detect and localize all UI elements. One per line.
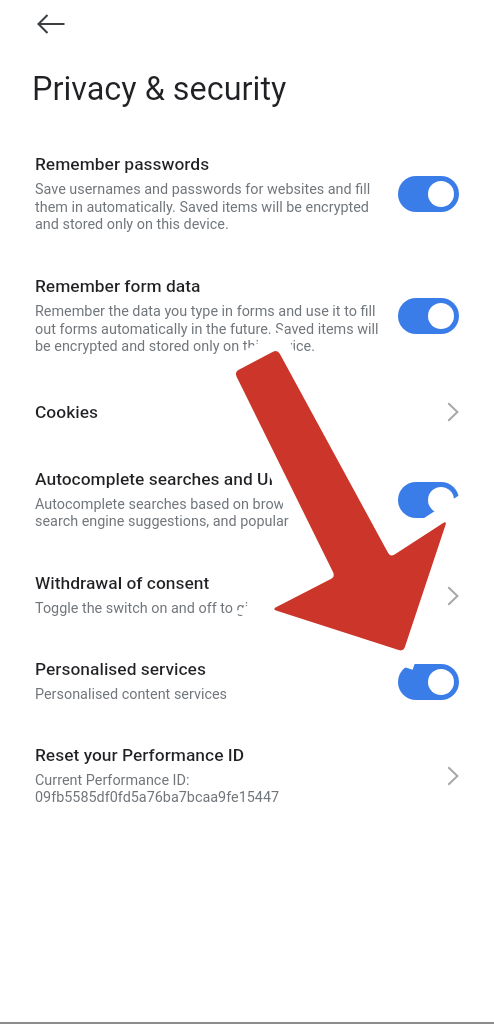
button[interactable]: Toggle switch on [398,298,459,334]
staticText: out forms automatically in the future. S… [35,321,465,338]
staticText: Toggle the switch on and off to give con… [35,600,465,617]
button[interactable] [0,645,494,719]
button[interactable]: Toggle switch on [398,664,459,700]
staticText: Current Performance ID: [35,772,465,789]
staticText: Personalised content services [35,686,465,703]
button[interactable]: Open [433,576,473,616]
staticText: 09fb5585df0fd5a76ba7bcaa9fe15447 [35,789,465,806]
button[interactable]: Open [433,392,473,432]
button[interactable] [0,388,494,437]
button[interactable] [0,140,494,248]
button[interactable]: Toggle switch on [398,176,459,212]
staticText: Remember passwords [35,154,395,174]
staticText: Remember form data [35,276,395,296]
staticText: Privacy & security [32,70,462,108]
button[interactable] [0,262,494,370]
staticText: Reset your Performance ID [35,745,395,765]
staticText: Withdrawal of consent [35,573,395,593]
button[interactable] [0,731,494,822]
staticText: Autocomplete searches based on browsing … [35,496,465,513]
staticText: Cookies [35,402,395,422]
staticText: Save usernames and passwords for website… [35,181,465,198]
staticText: Remember the data you type in forms and … [35,303,465,320]
staticText: Personalised services [35,659,395,679]
staticText: them in automatically. Saved items will … [35,199,465,216]
button[interactable] [0,559,494,633]
button[interactable]: Open [433,756,473,796]
staticText: Autocomplete searches and URLs [35,469,395,489]
button[interactable] [0,455,494,546]
button[interactable]: Toggle switch on [398,482,459,518]
staticText: and stored only on this device. [35,216,465,233]
staticText: be encrypted and stored only on this dev… [35,338,465,355]
button[interactable]: Back [28,1,74,47]
staticText: search engine suggestions, and popular w… [35,513,465,530]
